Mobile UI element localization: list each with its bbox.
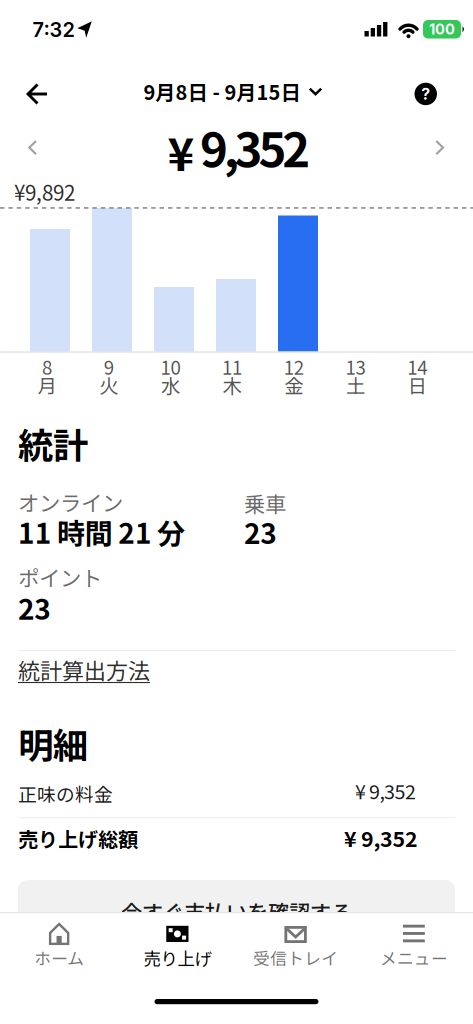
staticText: ¥ <box>167 118 194 184</box>
staticText: 10 <box>160 353 180 380</box>
staticText: 売り上げ総額 <box>18 824 138 853</box>
staticText: 土 <box>346 371 365 399</box>
staticText: 金 <box>284 371 303 399</box>
staticText: 乗車 <box>244 487 286 518</box>
staticText: 9月8日 - 9月15日 <box>143 77 300 106</box>
staticText: 統計算出方法 <box>18 654 150 686</box>
staticText: 統計 <box>18 418 88 469</box>
staticText: 23 <box>244 511 277 552</box>
staticText: 木 <box>223 371 242 399</box>
staticText: 水 <box>161 371 180 399</box>
staticText: 売り上げ <box>143 945 211 971</box>
button[interactable]: メニュー <box>355 912 473 970</box>
button[interactable]: 売り上げ <box>118 912 236 970</box>
staticText: 月 <box>37 371 56 399</box>
button[interactable]: 9月8日 - 9月15日 <box>143 77 322 106</box>
staticText: ¥ 9,352 <box>344 822 418 853</box>
button[interactable]: ホーム <box>0 912 118 970</box>
staticText: 14 <box>407 353 427 380</box>
staticText: 11 <box>222 353 242 380</box>
staticText: 13 <box>345 353 365 380</box>
staticText: 23 <box>18 587 51 628</box>
button[interactable]: Back <box>17 81 57 106</box>
staticText: 8 <box>42 353 52 380</box>
button[interactable]: 受信トレイ <box>236 912 355 970</box>
button[interactable]: 今すぐ支払いを確認する <box>18 880 455 943</box>
button[interactable]: Help <box>414 83 437 105</box>
staticText: オンライン <box>18 486 123 517</box>
button[interactable]: Next week <box>425 130 455 166</box>
staticText: ホーム <box>34 945 84 970</box>
staticText: 100 <box>429 20 455 38</box>
staticText: 11 時間 21 分 <box>18 511 185 552</box>
staticText: 9 <box>104 353 114 380</box>
staticText: メニュー <box>380 945 448 970</box>
staticText: 今すぐ支払いを確認する <box>121 896 352 927</box>
button[interactable]: Previous week <box>18 130 48 166</box>
staticText: 明細 <box>18 718 88 769</box>
staticText: 7:32 <box>32 18 74 42</box>
staticText: 9,352 <box>200 112 310 181</box>
staticText: 日 <box>408 371 427 399</box>
staticText: ポイント <box>18 561 102 592</box>
staticText: 火 <box>99 371 118 399</box>
staticText: 12 <box>284 353 304 380</box>
staticText: ¥ 9,352 <box>355 776 416 805</box>
staticText: ? <box>421 84 430 104</box>
staticText: ¥9,892 <box>14 177 75 207</box>
button[interactable]: 統計算出方法 <box>18 654 150 686</box>
staticText: 正味の料金 <box>18 780 113 807</box>
staticText: 受信トレイ <box>253 945 338 970</box>
